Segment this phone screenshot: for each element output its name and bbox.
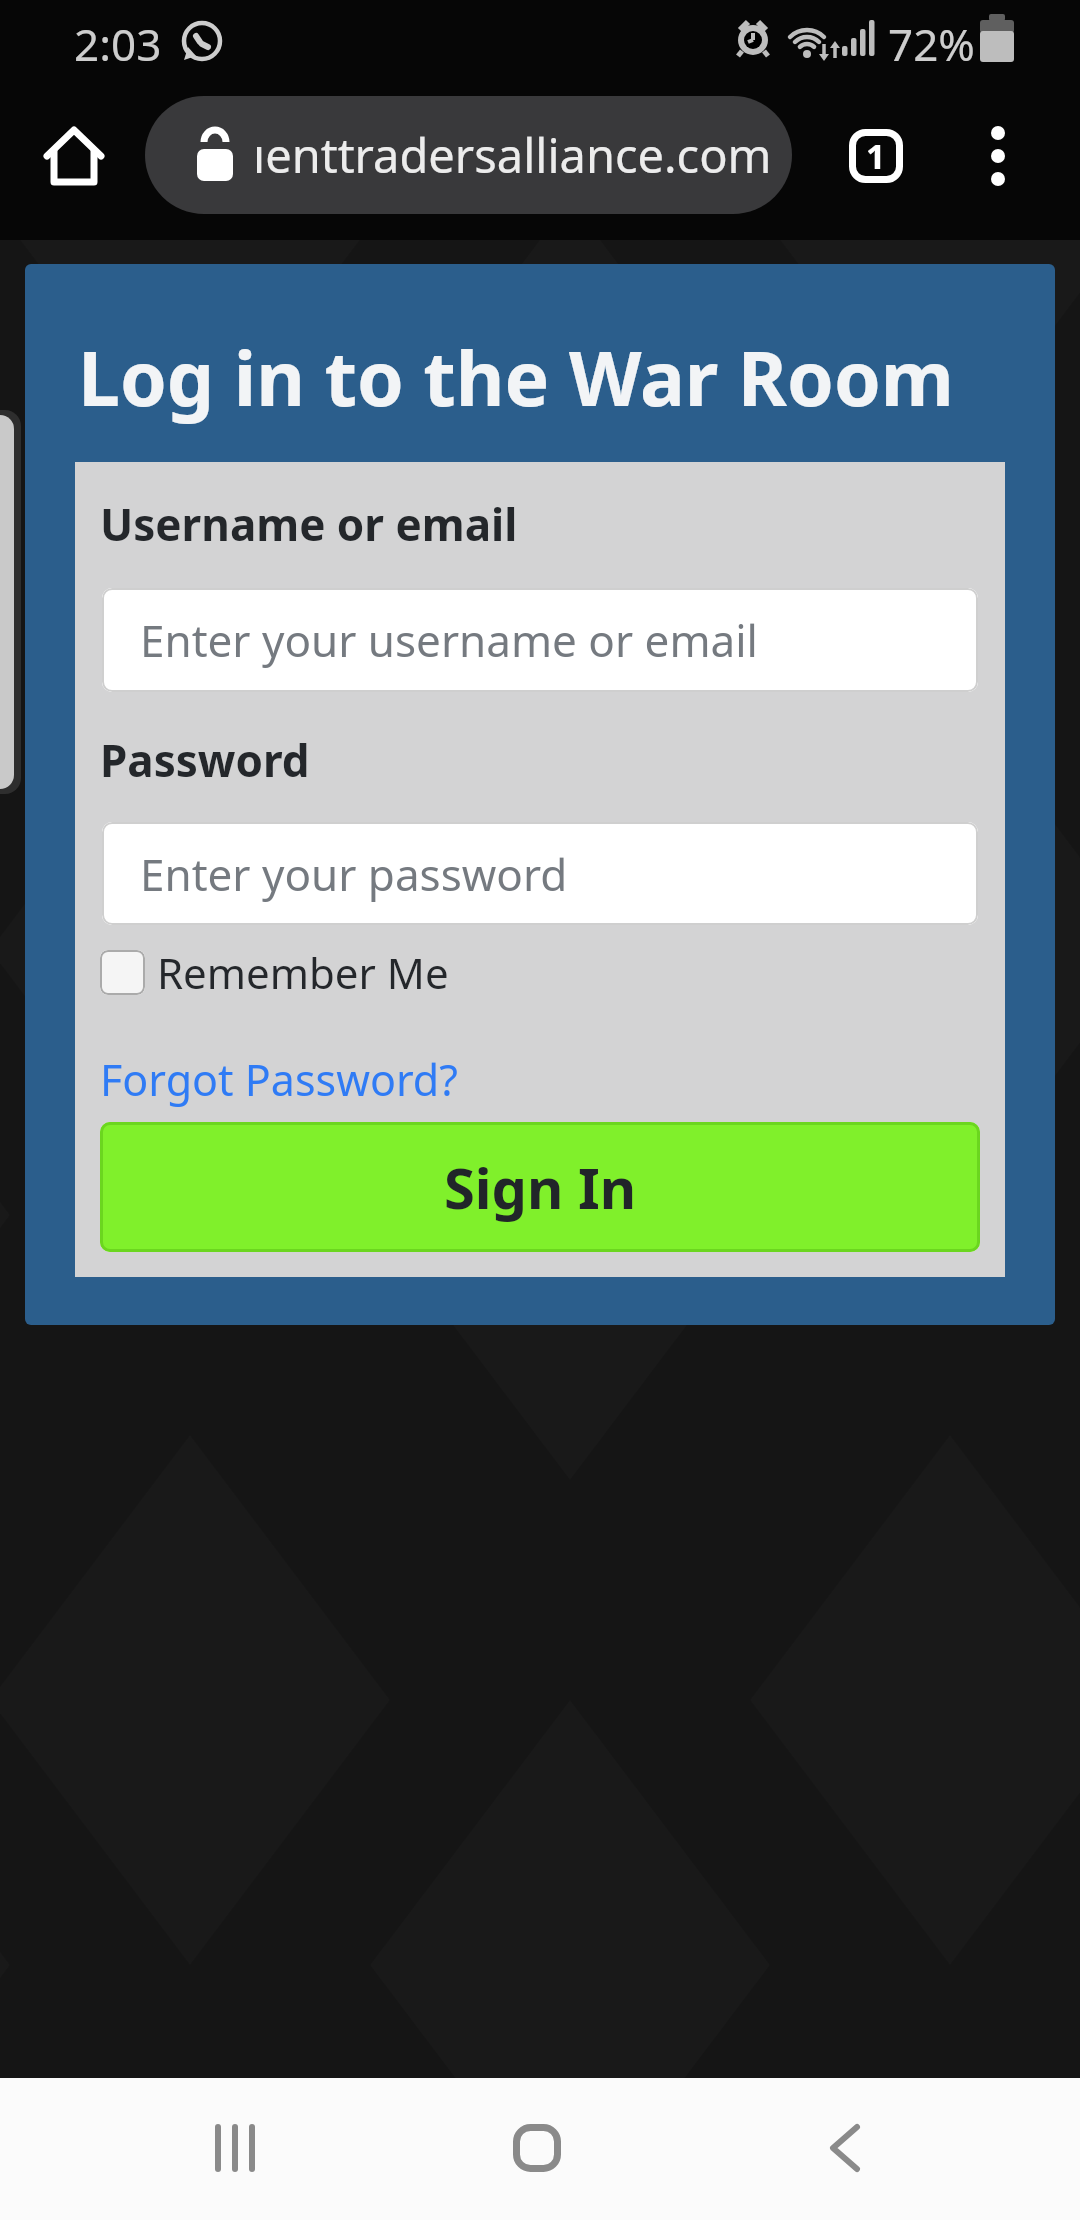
staticText: Remember Me [157, 944, 449, 1001]
staticText: Username or email [100, 494, 518, 554]
button[interactable] [956, 112, 1040, 200]
button[interactable]: ıenttradersalliance.com [145, 96, 792, 214]
button[interactable] [790, 2088, 900, 2208]
staticText: 2:03 [74, 14, 162, 74]
staticText: Password [100, 730, 310, 790]
button[interactable]: Remember Me [100, 944, 449, 1001]
staticText: 1 [866, 133, 886, 179]
staticText: ıenttradersalliance.com [253, 123, 772, 187]
button[interactable]: Enter your password [102, 822, 978, 925]
staticText: Log in to the War Room [78, 326, 954, 428]
button[interactable]: Forgot Password? [100, 1050, 458, 1109]
button[interactable]: 1 [832, 118, 920, 194]
staticText: Sign In [444, 1149, 637, 1225]
button[interactable] [482, 2088, 592, 2208]
button[interactable]: Enter your username or email [102, 588, 978, 692]
button[interactable] [180, 2088, 290, 2208]
button[interactable]: Sign In [100, 1122, 980, 1252]
staticText: 72% [888, 14, 975, 74]
staticText: Enter your password [140, 844, 568, 904]
button[interactable] [30, 112, 118, 200]
staticText: Enter your username or email [140, 610, 758, 670]
